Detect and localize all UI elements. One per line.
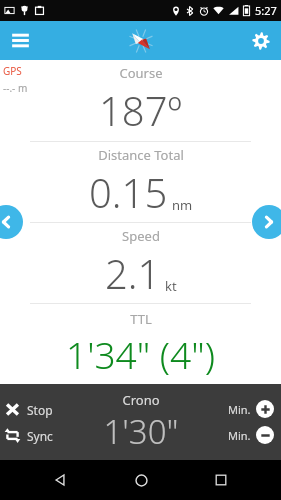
button[interactable]: Sync bbox=[4, 427, 53, 444]
other: Add minute bbox=[256, 400, 274, 418]
staticText: 2.1 bbox=[105, 246, 161, 300]
button[interactable]: Course bbox=[0, 60, 281, 141]
button[interactable]: Recents bbox=[201, 460, 241, 500]
button[interactable]: TTL bbox=[0, 304, 281, 384]
staticText: 1'34" (4") bbox=[66, 329, 215, 379]
staticText: Min. bbox=[228, 428, 251, 443]
button[interactable]: Distance Total bbox=[0, 142, 281, 222]
button[interactable]: Speed bbox=[0, 223, 281, 303]
staticText: Speed bbox=[122, 227, 160, 245]
staticText: kt bbox=[165, 277, 177, 295]
staticText: 1'30" bbox=[103, 409, 179, 454]
staticText: Min. bbox=[228, 402, 251, 417]
button[interactable]: Back bbox=[40, 460, 80, 500]
button[interactable]: Next bbox=[252, 205, 281, 239]
button[interactable]: Stop bbox=[4, 401, 53, 418]
button[interactable]: Menu bbox=[0, 21, 40, 60]
staticText: 5:27 bbox=[255, 3, 277, 18]
staticText: --.- m bbox=[3, 81, 28, 95]
staticText: Sync bbox=[27, 428, 53, 444]
button[interactable]: Settings bbox=[241, 21, 281, 60]
staticText: TTL bbox=[130, 310, 152, 328]
other: Subtract minute bbox=[256, 426, 274, 444]
staticText: GPS bbox=[3, 64, 22, 78]
button[interactable]: Home bbox=[121, 460, 161, 500]
staticText: 0.15 bbox=[89, 165, 168, 219]
button[interactable]: Previous bbox=[0, 205, 23, 239]
staticText: 187º bbox=[99, 83, 183, 137]
staticText: Distance Total bbox=[98, 146, 184, 164]
staticText: Course bbox=[119, 64, 163, 82]
button[interactable]: Min. bbox=[228, 400, 274, 418]
staticText: Stop bbox=[27, 402, 53, 418]
staticText: Crono bbox=[122, 391, 160, 409]
staticText: nm bbox=[172, 196, 193, 214]
button[interactable]: Min. bbox=[228, 426, 274, 444]
